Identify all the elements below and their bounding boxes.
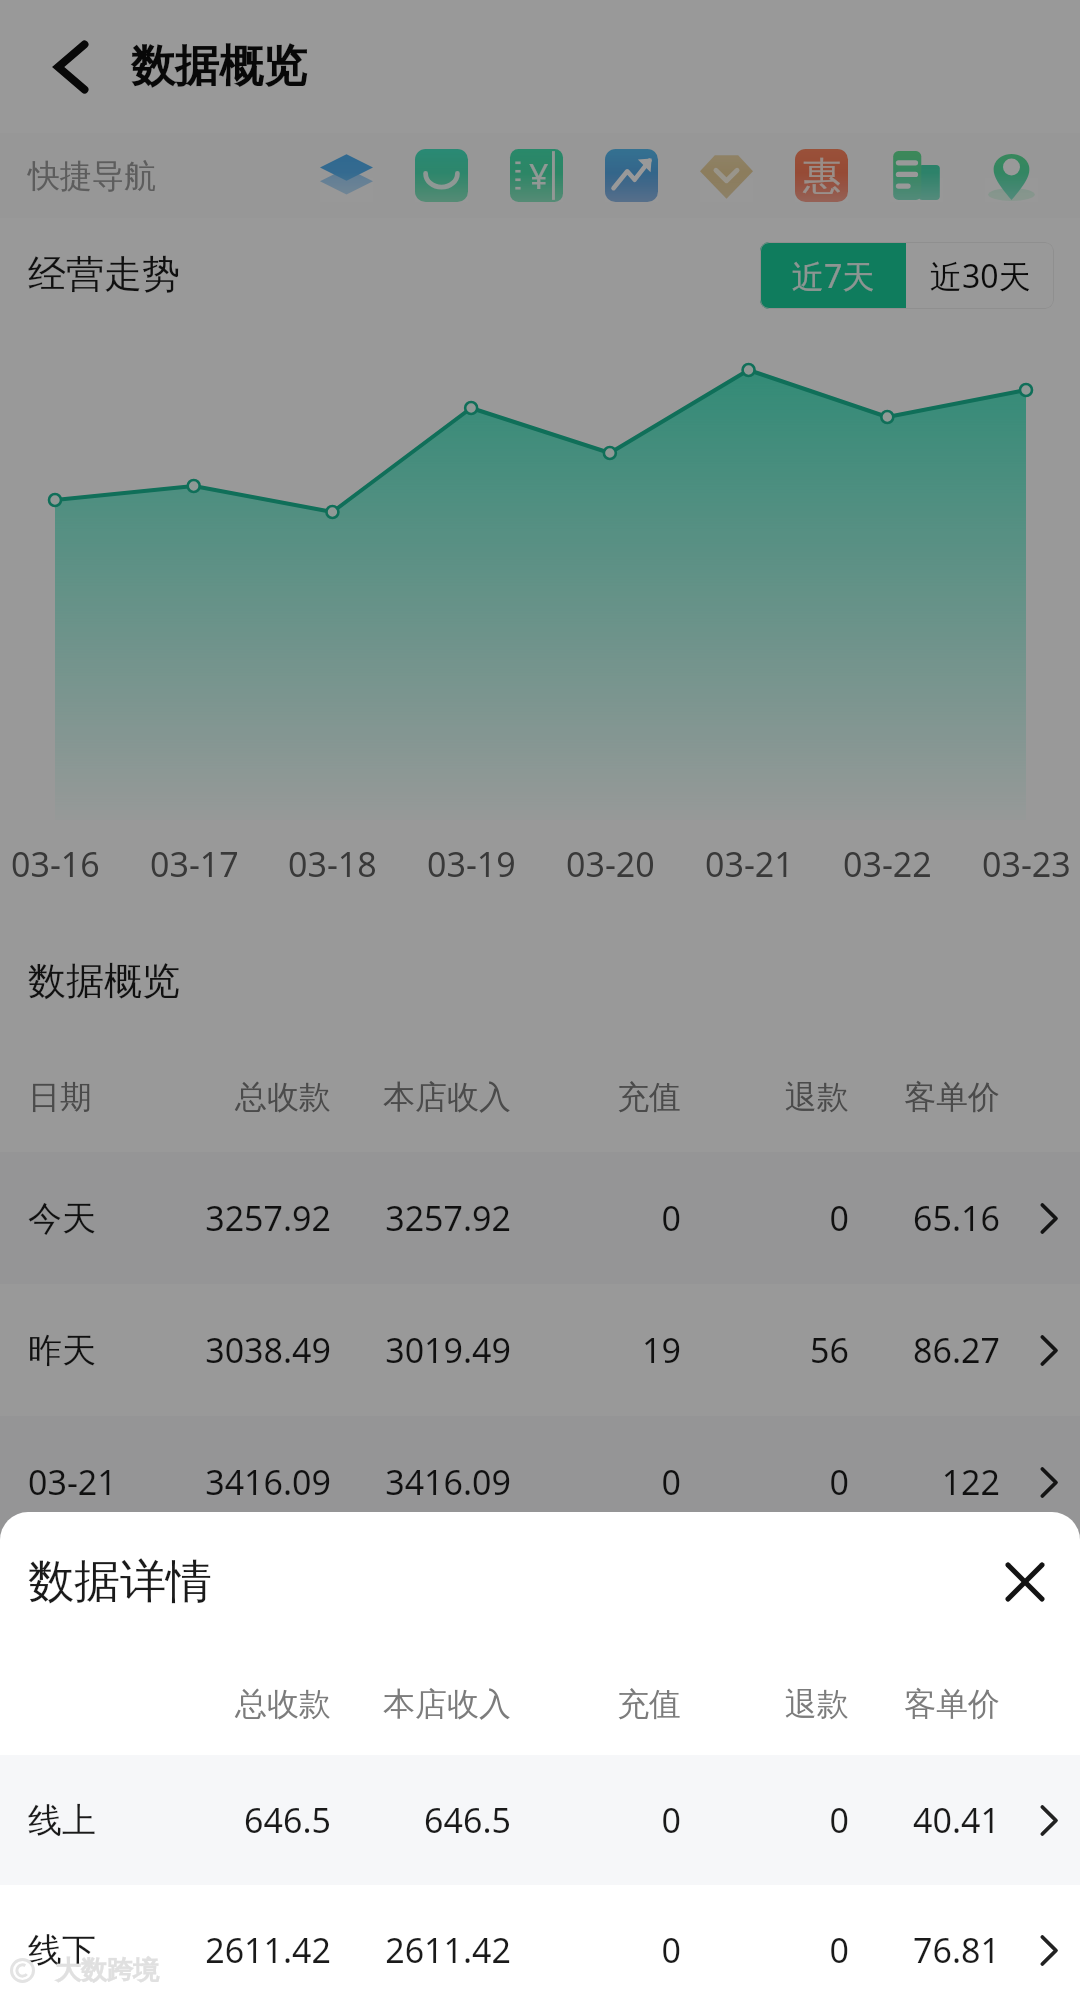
- button[interactable]: Location: [964, 133, 1059, 218]
- staticText: 0: [681, 1797, 849, 1843]
- button[interactable]: 昨天: [0, 1284, 1080, 1416]
- button[interactable]: Close: [983, 1540, 1067, 1624]
- button[interactable]: Member: [679, 133, 774, 218]
- staticText: 0: [511, 1797, 681, 1843]
- staticText: 0: [681, 1927, 849, 1973]
- button[interactable]: 近30天: [906, 242, 1054, 309]
- staticText: 03-16: [11, 841, 100, 887]
- staticText: 03-21: [705, 841, 794, 887]
- staticText: 122: [849, 1459, 1000, 1505]
- staticText: 退款: [681, 1077, 849, 1117]
- staticText: 3038.49: [180, 1327, 331, 1373]
- staticText: 数据概览: [131, 39, 307, 94]
- staticText: 大数跨境: [55, 1954, 159, 1987]
- staticText: 本店收入: [331, 1684, 511, 1724]
- staticText: 03-22: [843, 841, 932, 887]
- staticText: 近7天: [792, 254, 875, 298]
- staticText: 退款: [681, 1684, 849, 1724]
- staticText: 03-18: [288, 841, 377, 887]
- staticText: 本店收入: [331, 1077, 511, 1117]
- button[interactable]: 今天: [0, 1152, 1080, 1284]
- staticText: 03-19: [427, 841, 516, 887]
- button[interactable]: Promotion: [774, 133, 869, 218]
- staticText: 客单价: [849, 1077, 1000, 1117]
- staticText: 40.41: [849, 1797, 1000, 1843]
- staticText: 客单价: [849, 1684, 1000, 1724]
- staticText: 0: [681, 1195, 849, 1241]
- staticText: 日期: [28, 1077, 180, 1117]
- staticText: 3416.09: [331, 1459, 511, 1505]
- staticText: 76.81: [849, 1927, 1000, 1973]
- staticText: ¥: [529, 153, 549, 199]
- staticText: 惠: [803, 152, 841, 200]
- staticText: 03-17: [150, 841, 239, 887]
- staticText: 3019.49: [331, 1327, 511, 1373]
- staticText: 今天: [28, 1197, 180, 1240]
- staticText: 近30天: [930, 254, 1031, 298]
- staticText: 03-20: [566, 841, 655, 887]
- button[interactable]: 近7天: [760, 242, 906, 309]
- staticText: 86.27: [849, 1327, 1000, 1373]
- staticText: 65.16: [849, 1195, 1000, 1241]
- staticText: 646.5: [180, 1797, 331, 1843]
- staticText: 2611.42: [331, 1927, 511, 1973]
- button[interactable]: Report: [869, 133, 964, 218]
- staticText: 昨天: [28, 1329, 180, 1372]
- button[interactable]: 线上: [0, 1755, 1080, 1885]
- button[interactable]: Back: [0, 0, 142, 133]
- button[interactable]: 线下: [0, 1885, 1080, 1996]
- staticText: 03-23: [982, 841, 1071, 887]
- staticText: 快捷导航: [28, 156, 156, 196]
- button[interactable]: Shop: [394, 133, 489, 218]
- staticText: 646.5: [331, 1797, 511, 1843]
- staticText: 56: [681, 1327, 849, 1373]
- staticText: 3416.09: [180, 1459, 331, 1505]
- staticText: 充值: [511, 1077, 681, 1117]
- staticText: 19: [511, 1327, 681, 1373]
- staticText: 3257.92: [331, 1195, 511, 1241]
- staticText: 3257.92: [180, 1195, 331, 1241]
- staticText: 0: [511, 1195, 681, 1241]
- button[interactable]: 03-21: [0, 1416, 1080, 1548]
- staticText: 经营走势: [28, 250, 180, 298]
- staticText: 充值: [511, 1684, 681, 1724]
- button[interactable]: Ledger: [489, 133, 584, 218]
- staticText: 2611.42: [180, 1927, 331, 1973]
- staticText: 03-21: [28, 1459, 180, 1505]
- staticText: 0: [511, 1459, 681, 1505]
- staticText: 0: [681, 1459, 849, 1505]
- staticText: 数据详情: [28, 1553, 212, 1611]
- staticText: 总收款: [180, 1684, 331, 1724]
- button[interactable]: Trends: [584, 133, 679, 218]
- staticText: 线上: [28, 1799, 180, 1842]
- staticText: 0: [511, 1927, 681, 1973]
- button[interactable]: Layers: [299, 133, 394, 218]
- staticText: 总收款: [180, 1077, 331, 1117]
- staticText: 线下: [28, 1929, 180, 1972]
- staticText: 数据概览: [28, 957, 180, 1005]
